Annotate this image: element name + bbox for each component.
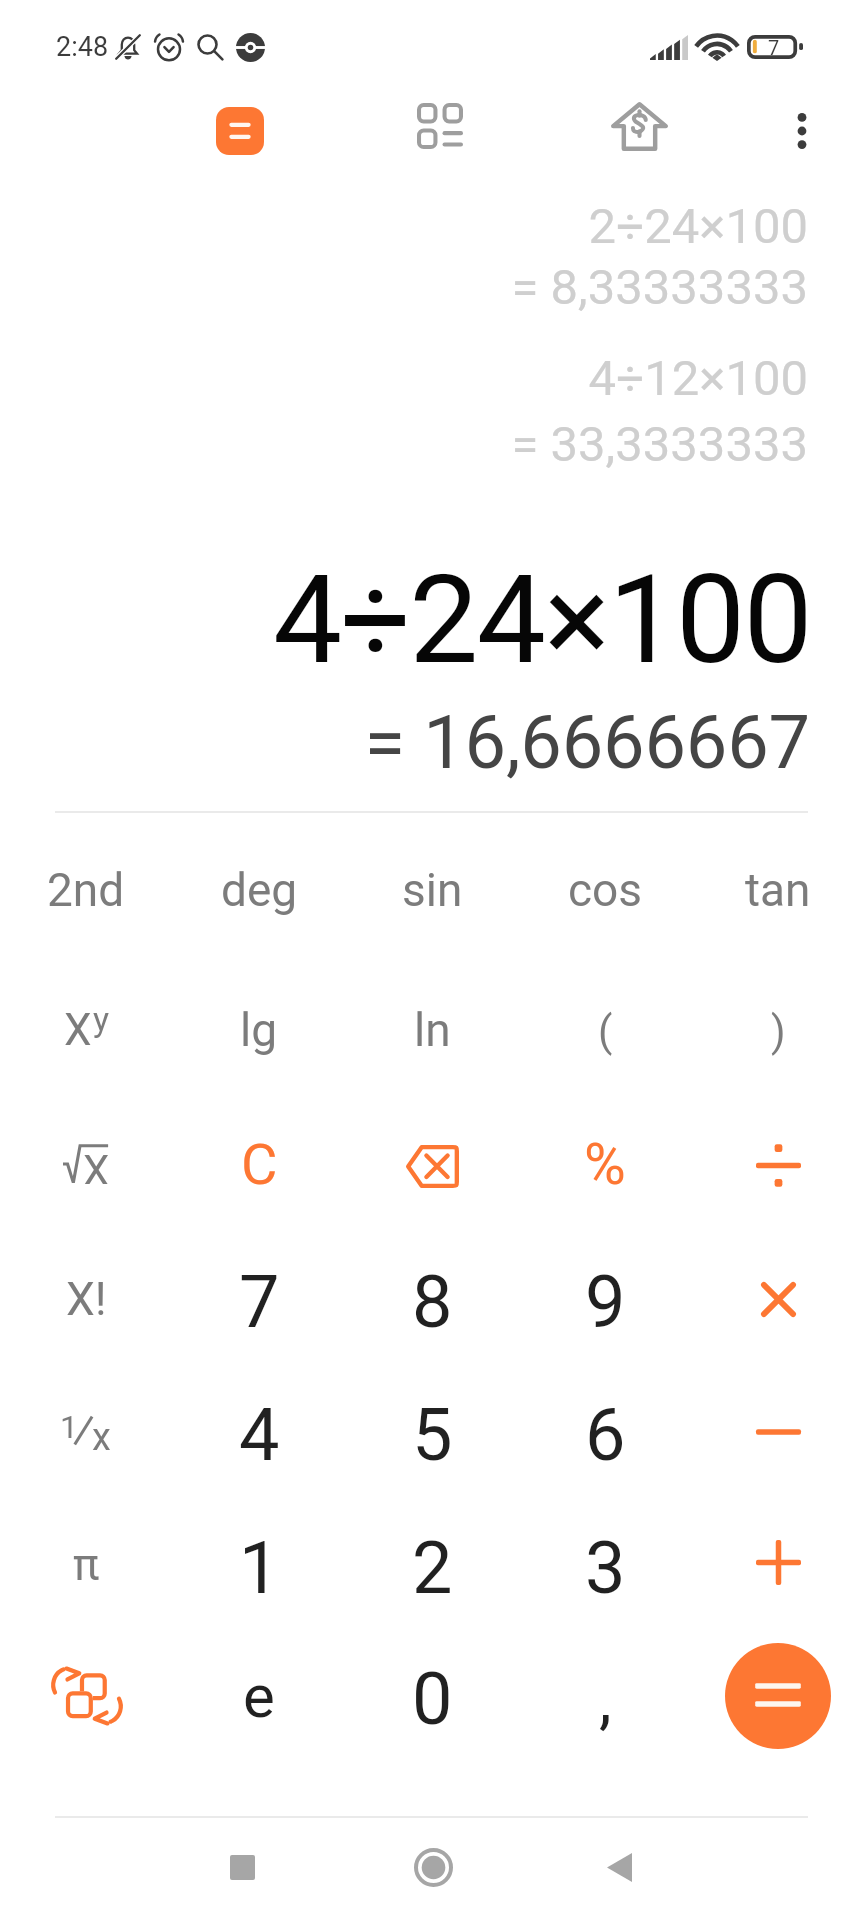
staticText: 2 bbox=[412, 1526, 453, 1610]
staticText: 7 bbox=[768, 36, 780, 59]
staticText: ( bbox=[598, 1007, 613, 1056]
button[interactable]: ( bbox=[522, 965, 688, 1095]
staticText: tan bbox=[745, 863, 811, 917]
button[interactable]: lg bbox=[176, 965, 342, 1095]
staticText: 8 bbox=[412, 1260, 453, 1344]
button[interactable]: 2 bbox=[349, 1500, 515, 1630]
button[interactable]: Square root bbox=[3, 1099, 169, 1229]
button[interactable]: 1 bbox=[176, 1500, 342, 1630]
button[interactable]: 8 bbox=[349, 1234, 515, 1364]
button[interactable]: 0 bbox=[349, 1631, 515, 1761]
button[interactable]: 4 bbox=[176, 1367, 342, 1497]
button[interactable]: Home bbox=[377, 1815, 489, 1919]
staticText: sin bbox=[402, 863, 463, 917]
button[interactable]: More options bbox=[747, 76, 857, 186]
button[interactable]: ln bbox=[349, 965, 515, 1095]
staticText: X bbox=[64, 1004, 92, 1056]
button[interactable]: 7 bbox=[176, 1234, 342, 1364]
staticText: = 16,6666667 bbox=[0, 699, 810, 786]
staticText: y bbox=[93, 999, 110, 1039]
button[interactable]: Backspace bbox=[349, 1099, 515, 1229]
staticText: 4÷12×100 bbox=[0, 350, 808, 407]
staticText: 4÷24×100 bbox=[0, 548, 811, 692]
staticText: 2÷24×100 bbox=[0, 198, 808, 255]
staticText: % bbox=[584, 1131, 626, 1198]
staticText: ln bbox=[414, 1003, 451, 1057]
staticText: 7 bbox=[239, 1260, 280, 1344]
button[interactable]: Divide bbox=[695, 1099, 861, 1229]
staticText: X! bbox=[66, 1272, 107, 1326]
staticText: ) bbox=[771, 1007, 786, 1056]
button[interactable]: e bbox=[176, 1631, 342, 1761]
staticText: 2:48 bbox=[56, 31, 109, 63]
staticText: 9 bbox=[585, 1260, 626, 1344]
button[interactable]: Unit converter bbox=[385, 71, 495, 181]
button[interactable]: Plus bbox=[695, 1500, 861, 1630]
button[interactable]: Back bbox=[563, 1815, 675, 1919]
button[interactable]: X to the power of y bbox=[3, 965, 169, 1095]
button[interactable]: ) bbox=[695, 965, 861, 1095]
staticText: lg bbox=[240, 1003, 278, 1057]
button[interactable]: deg bbox=[176, 825, 342, 955]
button[interactable]: X! bbox=[3, 1234, 169, 1364]
button[interactable]: Equals bbox=[695, 1631, 861, 1761]
button[interactable]: 5 bbox=[349, 1367, 515, 1497]
button[interactable]: Minus bbox=[695, 1367, 861, 1497]
button[interactable]: 6 bbox=[522, 1367, 688, 1497]
staticText: 2nd bbox=[47, 863, 125, 917]
button[interactable]: Multiply bbox=[695, 1234, 861, 1364]
button[interactable]: 2nd bbox=[3, 825, 169, 955]
staticText: 1 bbox=[239, 1526, 280, 1610]
staticText: , bbox=[599, 1663, 612, 1738]
button[interactable]: , bbox=[522, 1631, 688, 1761]
staticText: = 33,3333333 bbox=[0, 416, 808, 473]
staticText: 0 bbox=[412, 1657, 453, 1741]
button[interactable]: Calculator bbox=[186, 76, 294, 184]
button[interactable]: Mortgage calculator bbox=[584, 71, 694, 181]
staticText: e bbox=[243, 1661, 275, 1731]
staticText: C bbox=[241, 1132, 278, 1198]
button[interactable]: C bbox=[176, 1099, 342, 1229]
button[interactable]: sin bbox=[349, 825, 515, 955]
staticText: π bbox=[73, 1539, 100, 1591]
button[interactable]: 9 bbox=[522, 1234, 688, 1364]
button[interactable]: One over x bbox=[3, 1367, 169, 1497]
button[interactable]: 3 bbox=[522, 1500, 688, 1630]
staticText: 5 bbox=[412, 1393, 453, 1477]
button[interactable]: % bbox=[522, 1099, 688, 1229]
button[interactable]: tan bbox=[695, 825, 861, 955]
staticText: X bbox=[83, 1146, 110, 1184]
staticText: ⁄ bbox=[72, 1402, 95, 1461]
staticText: 6 bbox=[585, 1393, 626, 1477]
staticText: 4 bbox=[239, 1393, 280, 1477]
button[interactable]: π bbox=[3, 1500, 169, 1630]
button[interactable]: cos bbox=[522, 825, 688, 955]
button[interactable]: Recent apps bbox=[186, 1815, 298, 1919]
button[interactable]: Convert bbox=[3, 1631, 169, 1761]
staticText: x bbox=[92, 1415, 111, 1460]
staticText: cos bbox=[568, 863, 643, 917]
staticText: deg bbox=[221, 863, 298, 917]
staticText: 1 bbox=[60, 1408, 78, 1446]
staticText: 3 bbox=[585, 1526, 626, 1610]
staticText: = 8,33333333 bbox=[0, 259, 808, 316]
